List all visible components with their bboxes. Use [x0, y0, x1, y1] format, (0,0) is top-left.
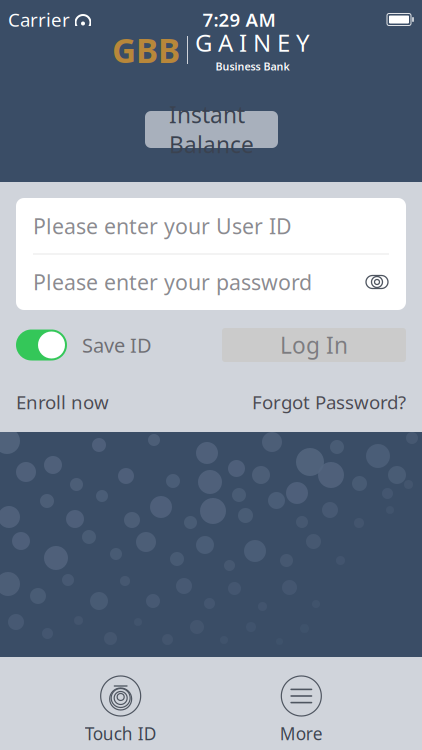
staticText: Business Bank: [215, 59, 289, 74]
staticText: Save ID: [82, 332, 152, 358]
staticText: Instant Balance: [169, 99, 254, 160]
staticText: Log In: [280, 330, 348, 360]
staticText: G A I N E Y: [195, 26, 310, 58]
button[interactable]: Please enter your User ID: [16, 198, 406, 253]
button[interactable]: Enroll now: [16, 390, 109, 414]
button[interactable]: More: [241, 675, 361, 745]
button[interactable]: Save ID: [16, 329, 152, 360]
button[interactable]: Instant Balance: [145, 111, 278, 148]
button[interactable]: Touch ID: [61, 675, 181, 745]
button[interactable]: Forgot Password?: [252, 390, 406, 414]
staticText: 7:29 AM: [202, 7, 275, 32]
staticText: Please enter your password: [33, 268, 312, 296]
staticText: Enroll now: [16, 390, 109, 414]
staticText: GBB: [112, 28, 180, 72]
button[interactable]: Please enter your password: [16, 254, 406, 309]
staticText: Carrier: [8, 7, 70, 32]
staticText: Please enter your User ID: [33, 212, 292, 240]
staticText: More: [280, 722, 323, 745]
staticText: Touch ID: [85, 722, 157, 745]
staticText: Forgot Password?: [252, 390, 406, 414]
button[interactable]: Log In: [222, 328, 406, 362]
